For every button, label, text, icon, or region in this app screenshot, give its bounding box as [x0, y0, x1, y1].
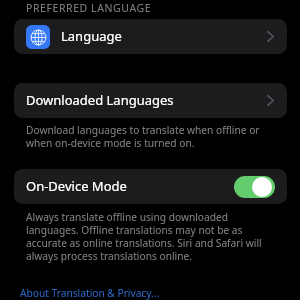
button[interactable]: On-Device Mode: [14, 169, 287, 204]
staticText: Download languages to translate when off…: [26, 123, 276, 150]
button[interactable]: About Translation & Privacy...: [20, 286, 160, 300]
staticText: Always translate offline using downloade…: [26, 210, 276, 263]
staticText: On-Device Mode: [26, 177, 127, 195]
other: Open: [267, 95, 274, 106]
button[interactable]: Downloaded Languages: [14, 83, 287, 118]
other: Open: [267, 31, 274, 42]
button[interactable]: Language: [14, 19, 287, 54]
button[interactable]: On-Device Mode toggle: [234, 176, 275, 198]
staticText: Language: [61, 27, 122, 45]
staticText: Downloaded Languages: [26, 91, 174, 109]
staticText: PREFERRED LANGUAGE: [26, 1, 152, 15]
staticText: About Translation & Privacy...: [20, 286, 160, 300]
